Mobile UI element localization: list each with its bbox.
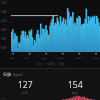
- staticText: |: [43, 62, 47, 66]
- staticText: 38:27: [92, 56, 99, 59]
- staticText: 15:02: [40, 56, 47, 59]
- staticText: 6:00: [1, 46, 7, 50]
- staticText: 4:30: [1, 19, 7, 23]
- button[interactable]: 3:30: [0, 0, 100, 52]
- button[interactable]: 154: [50, 79, 100, 95]
- staticText: 3:30: [1, 1, 7, 5]
- staticText: 全体: [58, 62, 65, 66]
- staticText: (bpm): [12, 72, 23, 77]
- staticText: 移動: [47, 62, 54, 66]
- staticText: 最大: [72, 91, 78, 95]
- staticText: 7:01: [24, 56, 29, 59]
- staticText: 23:03: [57, 56, 64, 59]
- staticText: 5:30: [1, 37, 7, 41]
- staticText: |: [54, 62, 58, 66]
- staticText: 4:00: [1, 10, 7, 14]
- button[interactable]: 127: [0, 79, 50, 95]
- staticText: 時間: [36, 62, 43, 66]
- staticText: 心拍: [3, 72, 12, 77]
- button[interactable]: 心拍: [0, 69, 100, 100]
- staticText: 0:00: [9, 56, 14, 59]
- staticText: 154: [68, 79, 83, 91]
- staticText: 5:00: [1, 28, 7, 32]
- staticText: 187: [1, 96, 6, 99]
- staticText: 30:04: [75, 56, 82, 59]
- staticText: 平均: [22, 91, 28, 95]
- staticText: 127: [18, 79, 33, 91]
